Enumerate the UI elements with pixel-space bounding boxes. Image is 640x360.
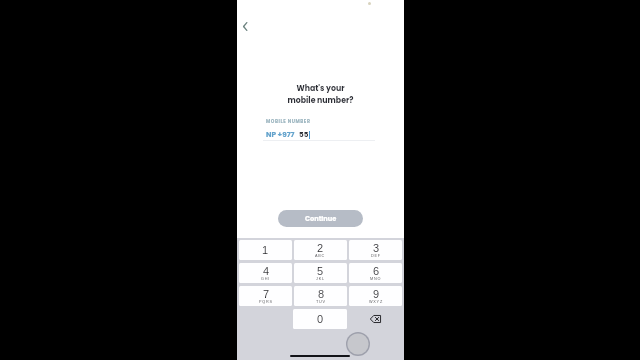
staticText: 3	[373, 242, 380, 254]
button[interactable]: Continue	[278, 210, 363, 227]
button[interactable]: 8	[294, 286, 347, 306]
button[interactable]: 4	[239, 263, 292, 283]
staticText: PQRS	[259, 300, 273, 304]
staticText: 1	[262, 244, 269, 256]
staticText: 8	[318, 288, 325, 300]
staticText: 2	[317, 242, 324, 254]
staticText: 7	[263, 288, 270, 300]
button[interactable]: 6	[349, 263, 402, 283]
staticText: NP +977	[266, 129, 295, 139]
staticText: MOBILE NUMBER	[266, 118, 311, 124]
staticText: 4	[263, 265, 270, 277]
button[interactable]: 3	[349, 240, 402, 260]
staticText: ABC	[315, 254, 326, 258]
staticText: TUV	[316, 300, 326, 304]
button[interactable]: 2	[294, 240, 347, 260]
staticText: 55	[299, 129, 309, 139]
staticText: WXYZ	[369, 300, 383, 304]
button[interactable]: 9	[349, 286, 402, 306]
button[interactable]: 1	[239, 240, 292, 260]
staticText: DEF	[371, 254, 381, 258]
staticText: Continue	[305, 214, 337, 223]
staticText: MNO	[370, 277, 382, 281]
staticText: 6	[373, 265, 380, 277]
staticText: JKL	[316, 277, 325, 281]
button[interactable]: 0	[293, 309, 347, 329]
button[interactable]: Backspace	[347, 309, 404, 329]
button[interactable]: 7	[239, 286, 292, 306]
staticText: 9	[373, 288, 380, 300]
staticText: 5	[317, 265, 324, 277]
staticText: 0	[317, 313, 324, 325]
button[interactable]: Back	[234, 15, 256, 37]
staticText: GHI	[261, 277, 271, 281]
button[interactable]: 5	[294, 263, 347, 283]
staticText: What's your mobile number?	[237, 83, 404, 106]
